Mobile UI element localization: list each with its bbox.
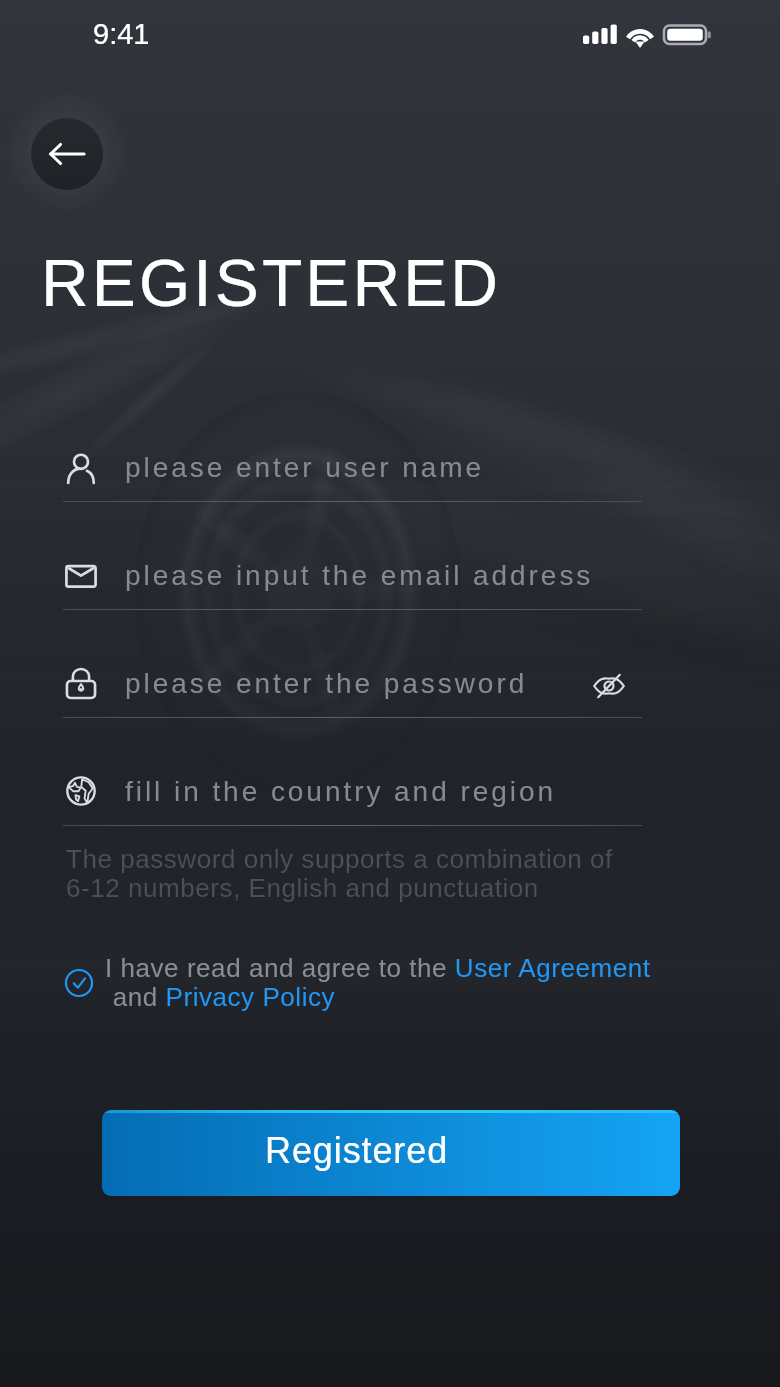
- button[interactable]: please enter the password: [63, 649, 642, 717]
- staticText: The password only supports a combination…: [66, 844, 613, 903]
- button[interactable]: Back: [31, 118, 103, 190]
- staticText: REGISTERED: [41, 246, 502, 320]
- staticText: please input the email address: [125, 560, 642, 591]
- button[interactable]: Registered: [102, 1110, 680, 1196]
- button[interactable]: Show password: [588, 659, 642, 707]
- staticText: I have read and agree to the User Agreem…: [105, 953, 651, 1012]
- button[interactable]: please enter user name: [63, 433, 642, 501]
- staticText: fill in the country and region: [125, 776, 642, 807]
- staticText: please enter the password: [125, 668, 588, 699]
- staticText: Registered: [265, 1130, 449, 1170]
- staticText: please enter user name: [125, 452, 642, 483]
- button[interactable]: please input the email address: [63, 541, 642, 609]
- staticText: 9:41: [93, 18, 150, 50]
- button[interactable]: fill in the country and region: [63, 757, 642, 825]
- button[interactable]: I have read and agree to the User Agreem…: [56, 944, 651, 1020]
